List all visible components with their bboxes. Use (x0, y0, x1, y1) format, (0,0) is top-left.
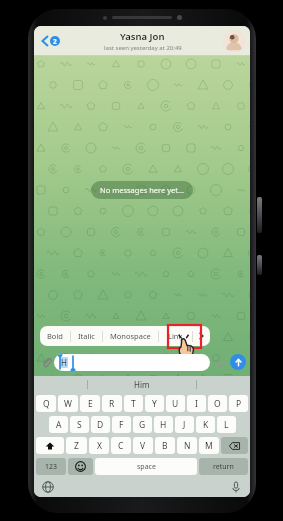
button[interactable]: Back (39, 31, 62, 51)
button[interactable]: return (199, 458, 248, 475)
button[interactable]: K (196, 416, 215, 433)
button[interactable]: P (229, 395, 248, 412)
button[interactable]: 123 (36, 458, 66, 475)
button[interactable]: J (175, 416, 194, 433)
button[interactable]: T (124, 395, 143, 412)
button[interactable]: V (133, 437, 153, 454)
staticText: Z (74, 440, 79, 452)
button[interactable]: F (112, 416, 131, 433)
button[interactable]: A (49, 416, 68, 433)
button[interactable]: Shift (36, 437, 64, 454)
staticText: 123 (45, 462, 58, 472)
button[interactable]: H (154, 416, 173, 433)
button[interactable]: E (80, 395, 100, 412)
staticText: 2 (53, 37, 57, 46)
staticText: J (183, 419, 186, 431)
staticText: E (88, 398, 93, 410)
staticText: I (195, 398, 198, 410)
button[interactable]: W (58, 395, 78, 412)
button[interactable]: Q (36, 395, 56, 412)
staticText: R (109, 398, 115, 410)
staticText: P (236, 398, 242, 410)
button[interactable]: D (91, 416, 110, 433)
staticText: Q (43, 398, 50, 410)
staticText: U (172, 398, 179, 410)
button[interactable]: Profile photo (223, 30, 245, 52)
staticText: Yasna Jon (120, 30, 165, 43)
button[interactable]: Attach file (38, 354, 54, 370)
staticText: L (224, 419, 229, 431)
button[interactable]: space (95, 458, 197, 475)
button[interactable]: Send (230, 354, 246, 370)
staticText: Him (134, 379, 150, 390)
button[interactable]: Y (145, 395, 164, 412)
button[interactable]: Monospace (103, 326, 158, 346)
staticText: Y (152, 398, 157, 410)
button[interactable]: S (70, 416, 89, 433)
button[interactable]: Z (66, 437, 87, 454)
button[interactable]: Emoji (213, 355, 227, 369)
staticText: space (137, 462, 156, 472)
staticText: S (77, 419, 82, 431)
staticText: F (119, 419, 124, 431)
staticText: Link (168, 331, 183, 341)
button[interactable]: Emoji keyboard (68, 458, 93, 475)
button[interactable]: L (217, 416, 236, 433)
button[interactable]: Him (88, 376, 196, 393)
staticText: N (184, 440, 191, 452)
button[interactable]: M (199, 437, 219, 454)
staticText: Italic (78, 331, 95, 341)
staticText: M (205, 440, 213, 452)
staticText: return (213, 462, 234, 472)
staticText: H (160, 419, 167, 431)
staticText: A (56, 419, 62, 431)
button[interactable]: O (208, 395, 227, 412)
button[interactable]: N (177, 437, 197, 454)
button[interactable]: Dictate (229, 480, 243, 494)
staticText: D (97, 419, 104, 431)
staticText: B (162, 440, 168, 452)
button[interactable]: R (102, 395, 122, 412)
staticText: K (203, 419, 209, 431)
staticText: C (118, 440, 124, 452)
staticText: No messages here yet... (100, 185, 184, 195)
staticText: V (140, 440, 146, 452)
staticText: X (97, 440, 102, 452)
staticText: O (214, 398, 221, 410)
staticText: Bold (47, 331, 63, 341)
button[interactable]: I (187, 395, 206, 412)
button[interactable]: U (166, 395, 185, 412)
button[interactable]: Backspace (221, 437, 248, 454)
button[interactable]: X (89, 437, 109, 454)
button[interactable]: More formatting options (193, 326, 210, 346)
staticText: Monospace (110, 331, 151, 341)
button[interactable]: Link (159, 326, 192, 346)
button[interactable]: G (133, 416, 152, 433)
staticText: G (139, 419, 146, 431)
button[interactable]: H (54, 354, 210, 371)
staticText: W (64, 398, 72, 410)
staticText: last seen yesterday at 20:49 (104, 44, 182, 52)
button[interactable]: C (111, 437, 131, 454)
staticText: T (131, 398, 136, 410)
button[interactable]: B (155, 437, 175, 454)
button[interactable]: Italic (71, 326, 102, 346)
button[interactable]: Change keyboard language (41, 480, 55, 494)
staticText: H (61, 357, 67, 368)
button[interactable]: Bold (40, 326, 70, 346)
